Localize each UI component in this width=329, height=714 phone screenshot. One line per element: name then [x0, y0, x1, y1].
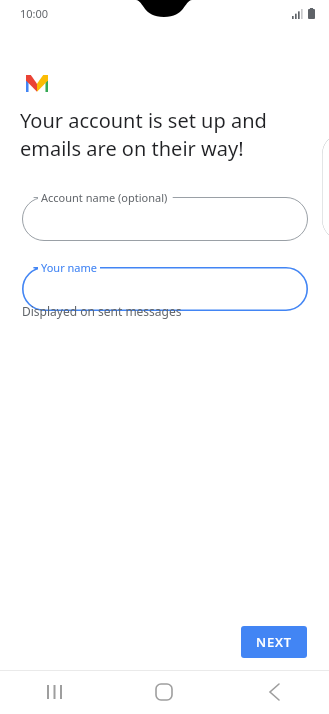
staticText: NEXT	[256, 633, 292, 651]
button[interactable]: Back	[219, 670, 329, 714]
staticText: 10:00	[20, 6, 49, 21]
button[interactable]: Home	[109, 670, 219, 714]
button[interactable]: NEXT	[241, 626, 307, 658]
staticText: Account name (optional)	[41, 190, 168, 205]
staticText: Your account is set up and emails are on…	[20, 107, 267, 162]
staticText: Your name	[41, 260, 97, 275]
button[interactable]: Account name (optional)	[22, 188, 308, 242]
button[interactable]: Recent apps	[0, 670, 109, 714]
staticText: Displayed on sent messages	[22, 303, 182, 319]
button[interactable]: Your name	[22, 258, 308, 312]
